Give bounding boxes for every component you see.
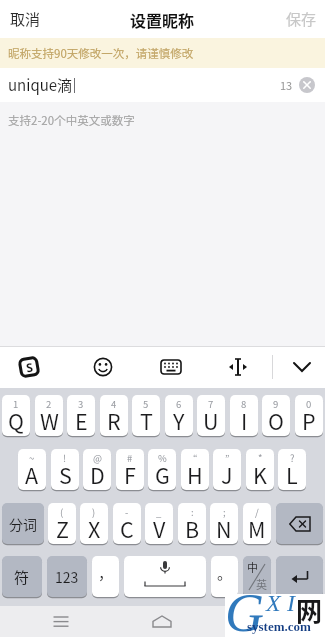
staticText: 7 [208,397,214,411]
button[interactable]: 123 [47,556,87,597]
button[interactable]: 符 [2,556,42,597]
staticText: 8 [241,397,247,411]
staticText: R [107,405,121,436]
staticText: unique滴 [8,74,73,96]
button[interactable] [93,357,113,377]
staticText: 设置昵称 [130,8,195,31]
staticText: system.com [247,619,311,633]
button[interactable]: 9 [262,395,290,436]
staticText: W [40,405,59,436]
button[interactable] [124,556,206,597]
staticText: @ [93,451,102,465]
button[interactable] [276,556,323,597]
button[interactable]: 保存 [286,8,317,30]
staticText: ? [290,451,295,465]
button[interactable]: 中 [243,556,271,597]
button[interactable]: / [243,503,271,544]
button[interactable]: ( [48,503,76,544]
staticText: 9 [273,397,279,411]
staticText: X [88,513,101,544]
staticText: 网 [296,591,323,629]
button[interactable]: ? [278,449,306,490]
button[interactable]: ! [51,449,79,490]
staticText: C [120,513,134,544]
button[interactable] [53,616,69,628]
button[interactable]: ” [213,449,241,490]
button[interactable]: 。 [211,556,238,597]
staticText: A [25,459,39,490]
staticText: “ [193,451,198,465]
button[interactable]: # [116,449,144,490]
staticText: P [302,405,316,436]
staticText: U [203,405,219,436]
button[interactable]: * [246,449,274,490]
staticText: 13 [280,77,293,93]
staticText: J [221,459,233,490]
button[interactable] [228,357,248,377]
button[interactable] [276,503,323,544]
button[interactable]: 分词 [2,503,44,544]
staticText: 取消 [10,8,41,30]
button[interactable] [152,615,172,629]
button[interactable]: ; [210,503,238,544]
staticText: 4 [111,397,117,411]
staticText: 6 [176,397,182,411]
staticText: M [248,513,266,544]
button[interactable]: 7 [197,395,225,436]
button[interactable]: - [113,503,141,544]
button[interactable] [299,77,315,93]
button[interactable]: “ [181,449,209,490]
staticText: I [241,405,248,436]
staticText: H [187,459,203,490]
staticText: 昵称支持90天修改一次，请谨慎修改 [8,45,194,62]
button[interactable]: _ [145,503,173,544]
button[interactable]: : [178,503,206,544]
button[interactable]: 取消 [10,8,41,30]
staticText: S [59,459,72,490]
button[interactable]: 4 [100,395,128,436]
staticText: G [225,583,264,637]
button[interactable]: 2 [35,395,63,436]
staticText: G [155,459,170,490]
button[interactable]: 6 [165,395,193,436]
staticText: 5 [143,397,149,411]
button[interactable]: % [148,449,176,490]
button[interactable]: S [17,355,41,379]
button[interactable] [161,358,181,376]
button[interactable]: 3 [67,395,95,436]
staticText: ~ [29,451,35,465]
staticText: N [216,513,232,544]
staticText: 1 [13,397,19,411]
staticText: 0 [306,397,312,411]
staticText: ) [92,505,96,519]
staticText: % [158,451,167,465]
staticText: ! [63,451,67,465]
button[interactable]: ) [80,503,108,544]
staticText: - [125,505,129,519]
staticText: X [266,590,281,617]
staticText: 符 [14,566,30,588]
staticText: B [185,513,200,544]
staticText: Q [8,405,24,436]
staticText: F [124,459,136,490]
staticText: E [75,405,88,436]
button[interactable] [253,615,267,629]
staticText: 2 [46,397,52,411]
staticText: S [25,358,34,375]
button[interactable]: 5 [132,395,160,436]
staticText: V [153,513,166,544]
staticText: L [286,459,298,490]
staticText: : [191,505,194,519]
staticText: 分词 [9,514,37,534]
button[interactable]: ， [92,556,119,597]
button[interactable] [292,357,312,377]
staticText: 英 [256,576,267,592]
staticText: / [255,505,259,519]
button[interactable]: 0 [295,395,323,436]
button[interactable]: 1 [2,395,30,436]
staticText: T [140,405,153,436]
button[interactable]: 8 [230,395,258,436]
button[interactable]: ~ [18,449,46,490]
button[interactable]: @ [83,449,111,490]
staticText: K [253,459,267,490]
